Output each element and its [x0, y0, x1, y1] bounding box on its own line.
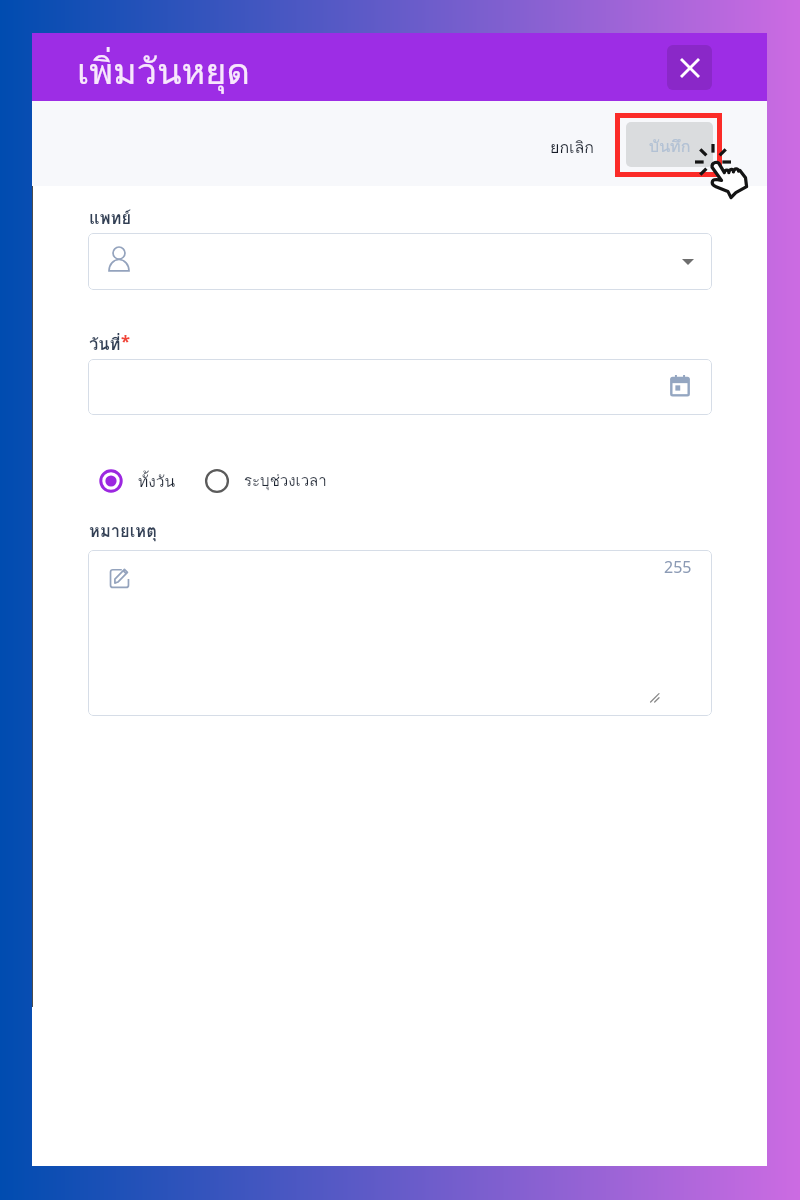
- staticText: ระบุช่วงเวลา: [244, 469, 327, 493]
- staticText: *: [121, 329, 130, 351]
- button[interactable]: ระบุช่วงเวลา: [204, 468, 327, 494]
- staticText: วันที่: [89, 331, 121, 357]
- button[interactable]: บันทึก: [626, 122, 713, 167]
- staticText: 255: [664, 556, 692, 578]
- staticText: เพิ่มวันหยุด: [77, 43, 250, 100]
- button[interactable]: หมายเหตุ: [88, 550, 712, 716]
- staticText: ยกเลิก: [550, 135, 595, 160]
- staticText: แพทย์: [89, 205, 132, 231]
- button[interactable]: เลือกแพทย์: [88, 233, 712, 290]
- button[interactable]: เลือกวันที่: [88, 359, 712, 415]
- button[interactable]: ทั้งวัน: [99, 468, 176, 494]
- staticText: ทั้งวัน: [138, 469, 176, 494]
- button[interactable]: Close: [667, 45, 712, 90]
- button[interactable]: ยกเลิก: [534, 125, 610, 170]
- staticText: หมายเหตุ: [89, 518, 157, 544]
- staticText: บันทึก: [649, 134, 691, 159]
